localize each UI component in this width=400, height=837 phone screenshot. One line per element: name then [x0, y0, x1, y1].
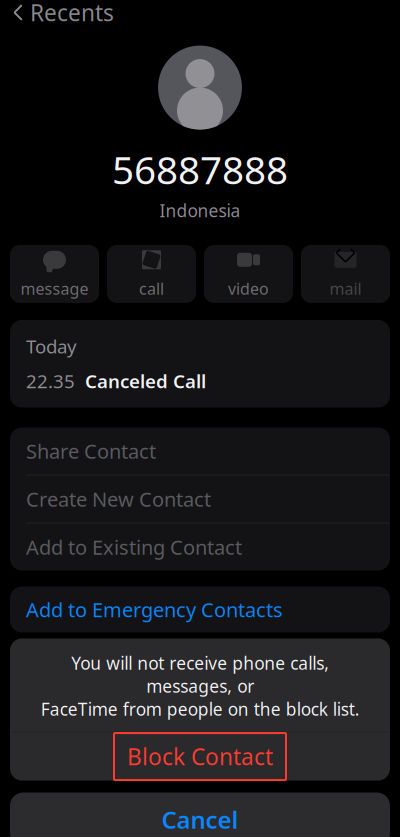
button[interactable]: message	[10, 245, 99, 303]
button[interactable]: mail	[301, 245, 390, 303]
staticText: Cancel	[161, 804, 238, 835]
button[interactable]: call	[107, 245, 196, 303]
staticText: Recents	[30, 0, 114, 28]
staticText: Share Contact	[26, 438, 156, 464]
staticText: message	[20, 278, 88, 299]
staticText: mail	[329, 278, 361, 299]
staticText: Block Contact	[127, 741, 273, 772]
staticText: video	[228, 278, 269, 299]
button[interactable]: video	[204, 245, 293, 303]
staticText: You will not receive phone calls, messag…	[40, 651, 359, 721]
staticText: Create New Contact	[26, 486, 211, 512]
button[interactable]: Block Contact	[10, 732, 390, 780]
staticText: call	[139, 278, 164, 299]
button[interactable]: Add to Emergency Contacts	[10, 586, 390, 632]
staticText: Indonesia	[159, 199, 240, 222]
staticText: Canceled Call	[85, 369, 206, 393]
button[interactable]: Create New Contact	[10, 475, 390, 522]
button[interactable]: Cancel	[10, 792, 390, 837]
button[interactable]: Recents	[0, 0, 126, 34]
button[interactable]: Share Contact	[10, 427, 390, 474]
staticText: 56887888	[112, 144, 288, 195]
staticText: Today	[26, 334, 77, 359]
staticText: 22.35	[26, 369, 75, 393]
staticText: Add to Existing Contact	[26, 534, 242, 560]
button[interactable]: Add to Existing Contact	[10, 523, 390, 570]
staticText: Add to Emergency Contacts	[26, 596, 283, 623]
